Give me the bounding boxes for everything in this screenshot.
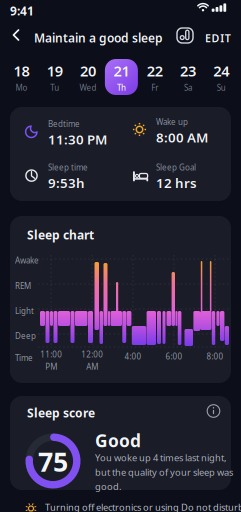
staticText: Maintain a good sleep [34, 30, 163, 46]
staticText: Awake [15, 255, 39, 266]
staticText: 9:53h [48, 174, 85, 192]
staticText: You woke up 4 times last night, but the … [95, 451, 233, 493]
staticText: Sleep Goal [156, 162, 196, 173]
staticText: 6:00 [165, 351, 182, 362]
staticText: Deep [15, 330, 36, 341]
staticText: 9:41 [10, 3, 34, 19]
staticText: 21 [113, 61, 129, 80]
staticText: 12:00 AM [81, 349, 103, 372]
staticText: Su [217, 82, 226, 93]
button[interactable]: 20 [72, 58, 105, 96]
staticText: Light [15, 305, 34, 316]
button[interactable]: Info [204, 402, 222, 420]
staticText: 19 [47, 61, 63, 80]
staticText: Sleep time [48, 162, 88, 173]
button[interactable]: 24 [205, 58, 238, 96]
staticText: REM [15, 280, 31, 291]
button[interactable]: Turning off electronics or using Do not … [25, 501, 241, 512]
button[interactable]: 19 [38, 58, 71, 96]
staticText: Th [117, 82, 126, 93]
staticText: Mo [15, 82, 27, 93]
button[interactable]: 18 [5, 58, 38, 96]
staticText: 12 hrs [156, 174, 197, 192]
staticText: Good [95, 429, 141, 452]
staticText: 75 [38, 444, 68, 479]
staticText: 24 [213, 61, 229, 80]
staticText: 23 [180, 61, 196, 80]
staticText: Wed [80, 82, 97, 93]
staticText: 11:30 PM [48, 130, 107, 148]
button[interactable]: 21 [105, 58, 138, 96]
staticText: Wake up [156, 116, 188, 127]
staticText: Fr [151, 82, 158, 93]
button[interactable]: EDIT [201, 25, 235, 51]
staticText: Sleep score [27, 405, 95, 421]
staticText: Bedtime [48, 118, 80, 129]
staticText: 18 [13, 61, 29, 80]
staticText: EDIT [205, 31, 231, 45]
staticText: Tu [50, 82, 59, 93]
staticText: Turning off electronics or using Do not … [45, 501, 241, 512]
staticText: Sa [184, 82, 192, 93]
button[interactable]: Statistics [172, 23, 196, 47]
button[interactable]: Back [2, 21, 30, 49]
staticText: 11:00 PM [40, 349, 62, 372]
staticText: 22 [147, 61, 163, 80]
staticText: 8:00 [206, 351, 223, 362]
staticText: 4:00 [124, 351, 141, 362]
staticText: Time [15, 352, 33, 363]
staticText: 8:00 AM [156, 128, 208, 146]
button[interactable]: 22 [138, 58, 171, 96]
staticText: Sleep chart [27, 227, 94, 243]
button[interactable]: 23 [171, 58, 204, 96]
staticText: 20 [80, 61, 96, 80]
